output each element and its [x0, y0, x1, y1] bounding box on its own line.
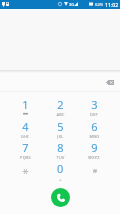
staticText: 5	[57, 119, 64, 134]
staticText: 4	[22, 119, 29, 134]
staticText: 62%	[95, 2, 104, 8]
staticText: GHI	[21, 134, 29, 139]
staticText: 3G	[69, 2, 75, 7]
button[interactable]: 2	[43, 96, 77, 117]
staticText: DEF	[90, 112, 98, 117]
staticText: ABC	[56, 112, 65, 117]
staticText: WXYZ	[88, 155, 100, 160]
staticText: 1	[22, 97, 29, 112]
button[interactable]: Star	[8, 161, 42, 182]
button[interactable]: 1	[8, 96, 42, 117]
button[interactable]: 3	[77, 96, 111, 117]
button[interactable]: 6	[77, 118, 111, 139]
button[interactable]: 8	[43, 139, 77, 160]
staticText: 8	[57, 140, 64, 155]
staticText: 2	[57, 97, 64, 112]
button[interactable]: 4	[8, 118, 42, 139]
button[interactable]: 0	[43, 161, 77, 182]
staticText: 9	[91, 140, 98, 155]
staticText: 3	[91, 97, 98, 112]
button[interactable]: 7	[8, 139, 42, 160]
staticText: +	[59, 177, 62, 182]
staticText: 0	[57, 161, 64, 176]
staticText: TUV	[56, 155, 65, 160]
staticText: PQRS	[20, 155, 31, 160]
staticText: JKL	[57, 134, 64, 139]
button[interactable]: Backspace	[102, 75, 118, 89]
button[interactable]: Call	[51, 188, 70, 207]
staticText: 11:02	[105, 1, 119, 8]
staticText: 7	[22, 140, 29, 155]
button[interactable]: 9	[77, 139, 111, 160]
button[interactable]: Pound	[77, 161, 111, 182]
staticText: MNO	[89, 134, 100, 139]
staticText: 6	[91, 119, 98, 134]
button[interactable]: 5	[43, 118, 77, 139]
